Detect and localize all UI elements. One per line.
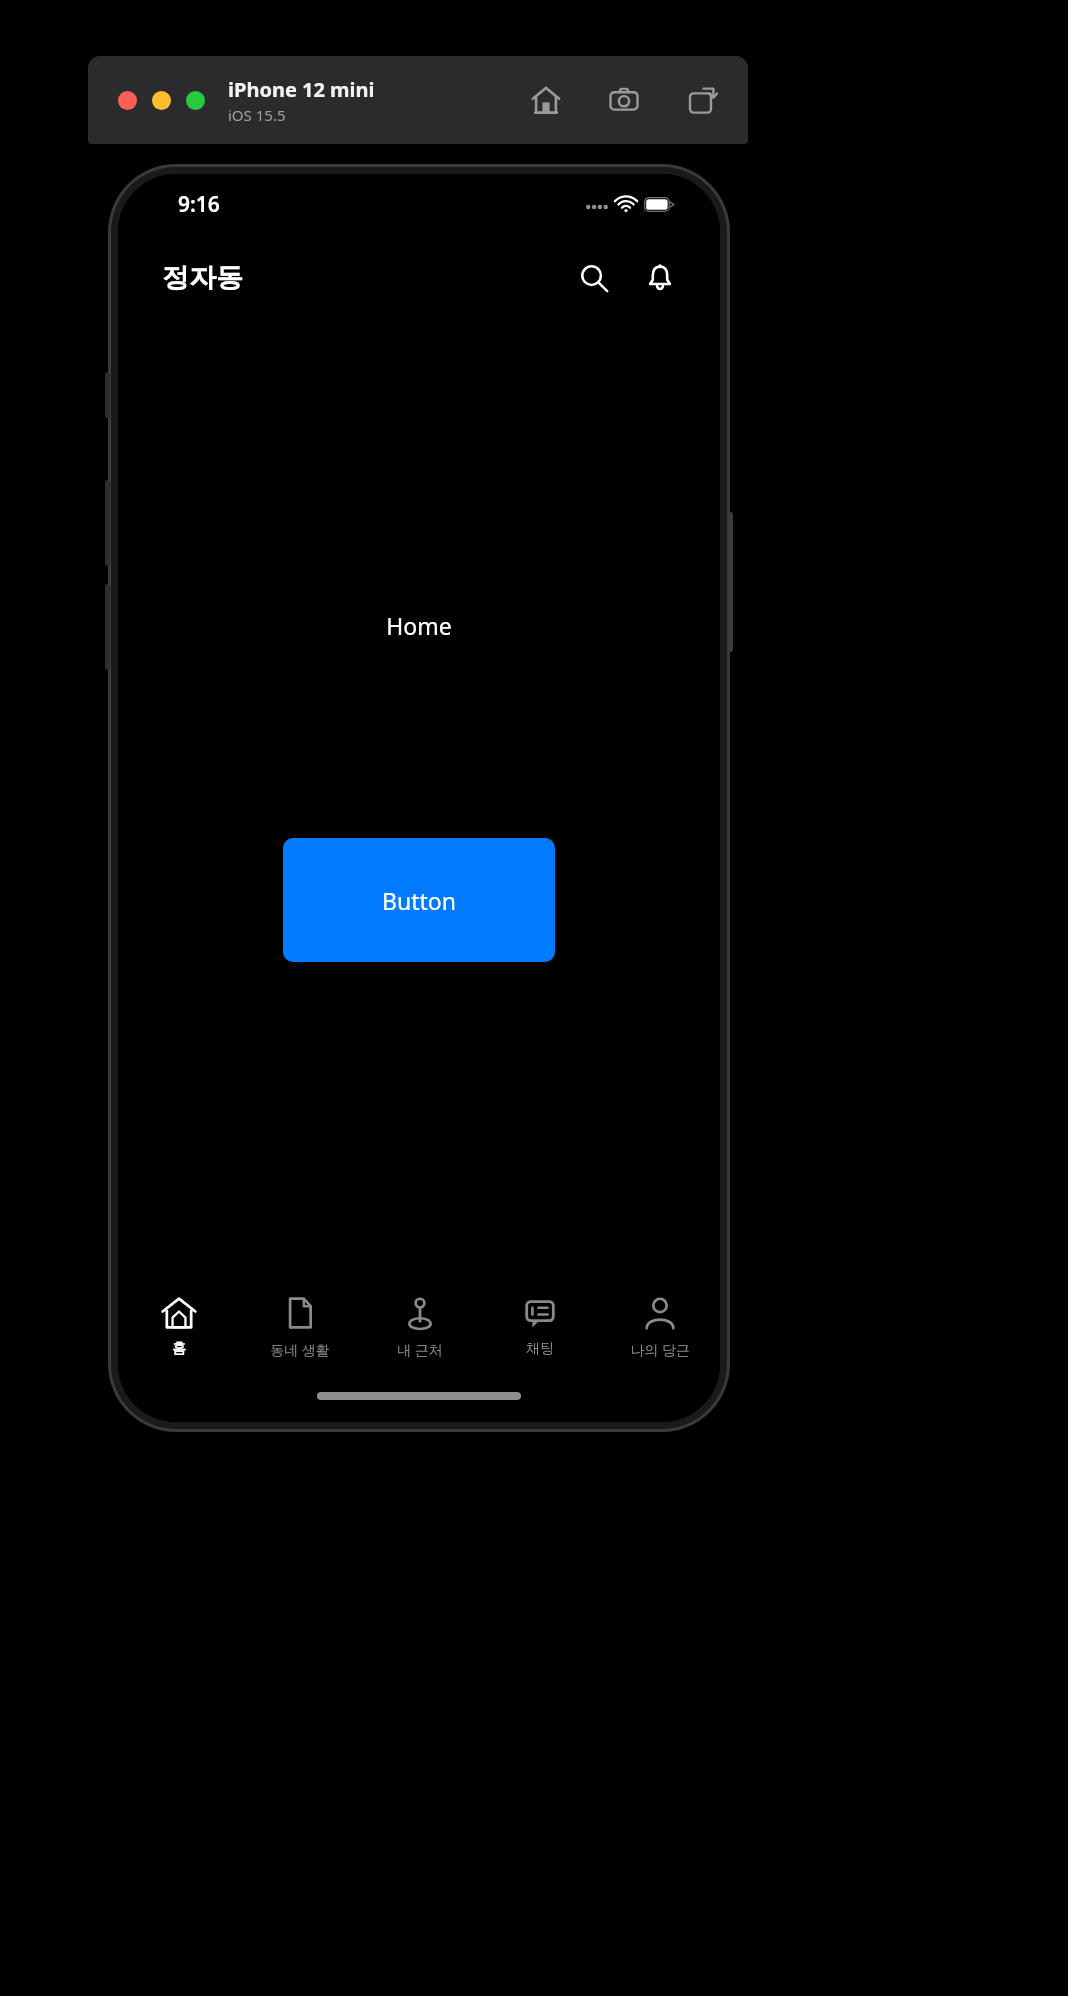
- staticText: 홈: [172, 1340, 186, 1358]
- button[interactable]: 나의 당근: [600, 1286, 720, 1367]
- button[interactable]: Search: [570, 254, 618, 302]
- staticText: 내 근처: [397, 1340, 443, 1359]
- staticText: Home: [386, 610, 452, 641]
- button[interactable]: Close: [118, 91, 137, 110]
- staticText: iPhone 12 mini: [228, 76, 375, 103]
- staticText: 정자동: [162, 261, 243, 295]
- button[interactable]: Notifications: [636, 254, 684, 302]
- staticText: 채팅: [526, 1340, 554, 1358]
- staticText: 나의 당근: [630, 1340, 690, 1359]
- button[interactable]: 내 근처: [360, 1286, 480, 1367]
- button[interactable]: 채팅: [480, 1286, 600, 1366]
- button[interactable]: Zoom: [186, 91, 205, 110]
- staticText: iOS 15.5: [228, 105, 286, 125]
- staticText: 동네 생활: [270, 1340, 330, 1359]
- button[interactable]: Home: [528, 82, 564, 118]
- button[interactable]: 홈: [118, 1286, 239, 1366]
- button[interactable]: Rotate: [684, 82, 720, 118]
- staticText: 9:16: [178, 190, 220, 219]
- button[interactable]: Minimize: [152, 91, 171, 110]
- button[interactable]: Button: [283, 838, 555, 962]
- button[interactable]: Screenshot: [606, 82, 642, 118]
- button[interactable]: 동네 생활: [239, 1286, 360, 1367]
- staticText: Button: [382, 885, 456, 916]
